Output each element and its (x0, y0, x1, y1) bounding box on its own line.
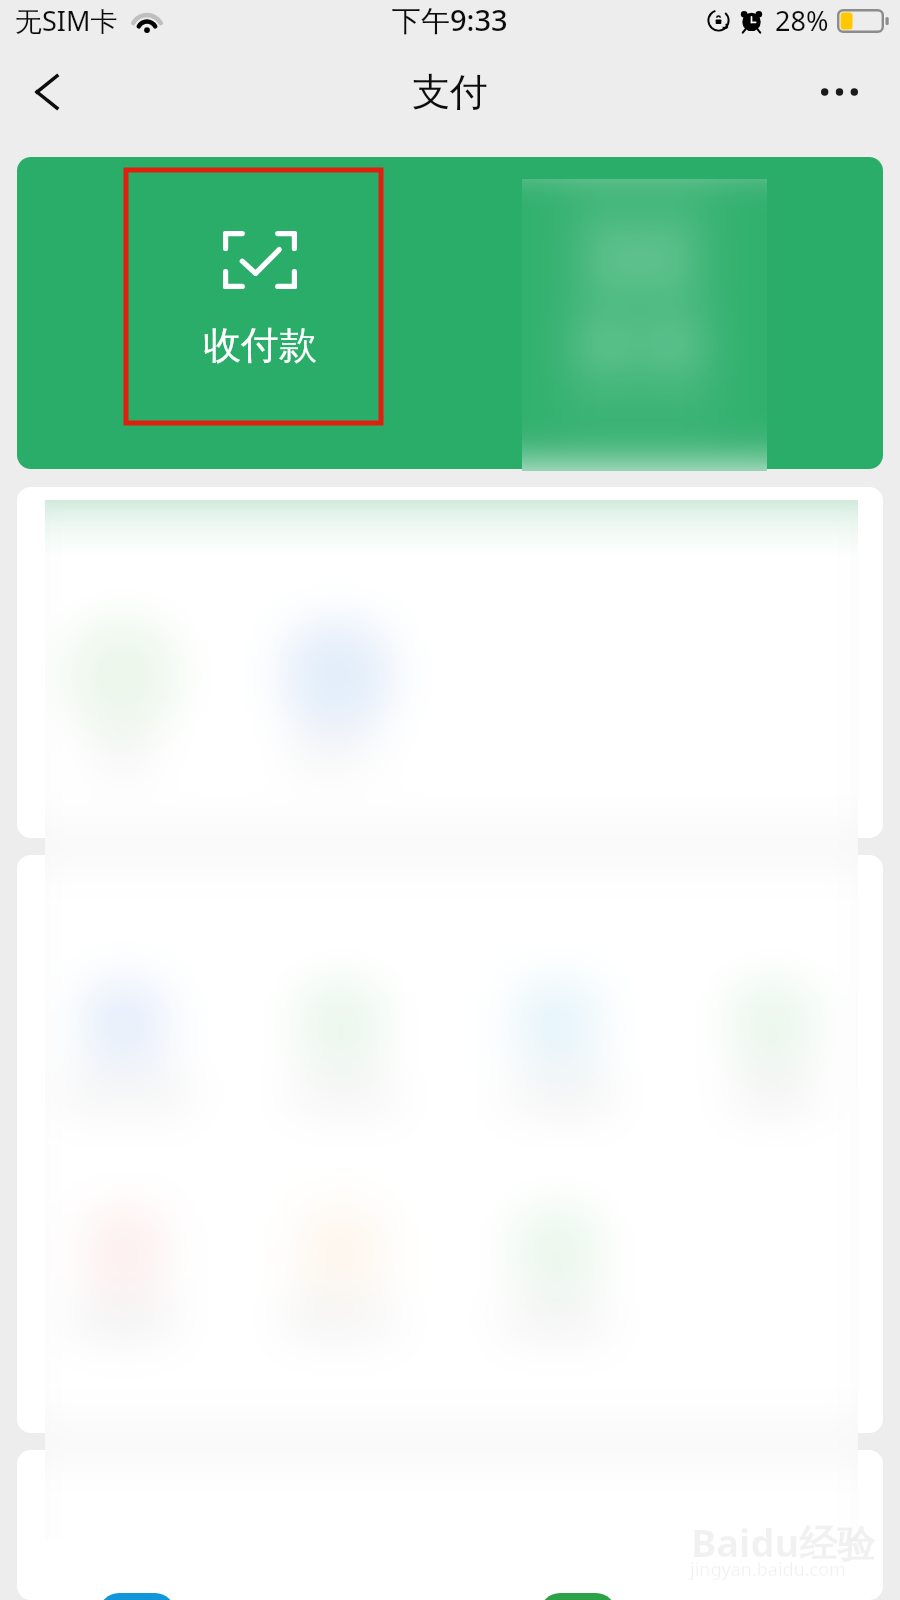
button[interactable]: 收付款 (140, 177, 380, 449)
staticText: 无SIM卡 (15, 2, 118, 39)
button[interactable]: 返回 (14, 59, 80, 125)
button[interactable]: 钱包 (17, 624, 227, 775)
button[interactable]: 城市服务 (449, 1207, 665, 1340)
button[interactable]: 火车票机票 (99, 1593, 175, 1600)
staticText: 28% (775, 2, 829, 39)
staticText: 收付款 (203, 321, 317, 369)
button[interactable]: 收付款 (140, 177, 380, 449)
staticText: 收付款 (203, 321, 317, 369)
staticText: 收付款 (203, 321, 317, 369)
button[interactable]: 更多 (806, 59, 872, 125)
button[interactable]: 银行卡 (227, 624, 447, 775)
button[interactable]: 返回 (14, 59, 80, 125)
button[interactable]: 火车票机票 (99, 1593, 175, 1600)
staticText: 无SIM卡 (15, 2, 118, 39)
button[interactable]: 腾讯公益 (233, 1207, 449, 1340)
button[interactable]: 返回 (14, 59, 80, 125)
button[interactable]: 城市服务 (449, 1207, 665, 1340)
button[interactable]: 手机充值 (233, 981, 449, 1114)
button[interactable]: 生活缴费 (449, 981, 665, 1114)
button[interactable]: 更多 (806, 59, 872, 125)
button[interactable]: 火车票机票 (99, 1593, 175, 1600)
staticText: 下午9:33 (392, 0, 508, 40)
button[interactable]: 收付款 (140, 177, 380, 449)
button[interactable]: 信用卡还款 (17, 981, 233, 1114)
button[interactable]: 滴滴出行 (540, 1593, 616, 1600)
button[interactable]: 银行卡 (227, 624, 447, 775)
staticText: 支付 (412, 68, 488, 116)
staticText: 下午9:33 (392, 0, 508, 40)
staticText: 28% (775, 2, 829, 39)
button[interactable]: 生活缴费 (449, 981, 665, 1114)
button[interactable]: 信用卡还款 (17, 981, 233, 1114)
button[interactable]: 保险服务 (17, 1207, 233, 1340)
button[interactable]: 银行卡 (227, 624, 447, 775)
button[interactable]: 信用卡还款 (17, 981, 233, 1114)
button[interactable]: 腾讯公益 (233, 1207, 449, 1340)
button[interactable]: 手机充值 (233, 981, 449, 1114)
button[interactable]: 滴滴出行 (540, 1593, 616, 1600)
button[interactable]: 保险服务 (17, 1207, 233, 1340)
button[interactable]: 扫一扫 (520, 177, 760, 449)
button[interactable]: 滴滴出行 (540, 1593, 616, 1600)
staticText: 无SIM卡 (15, 2, 118, 39)
button[interactable]: 手机充值 (233, 981, 449, 1114)
staticText: Baidu经验 (691, 1516, 876, 1568)
button[interactable]: 理财通 (665, 981, 881, 1114)
staticText: 28% (775, 2, 829, 39)
button[interactable]: 钱包 (17, 624, 227, 775)
button[interactable]: 扫一扫 (520, 177, 760, 449)
staticText: 下午9:33 (392, 0, 508, 40)
button[interactable]: 理财通 (665, 981, 881, 1114)
staticText: jingyan.baidu.com (690, 1557, 846, 1582)
button[interactable]: 钱包 (17, 624, 227, 775)
button[interactable]: 城市服务 (449, 1207, 665, 1340)
button[interactable]: 更多 (806, 59, 872, 125)
staticText: 支付 (412, 68, 488, 116)
button[interactable]: 扫一扫 (520, 177, 760, 449)
button[interactable]: 保险服务 (17, 1207, 233, 1340)
button[interactable]: 生活缴费 (449, 981, 665, 1114)
button[interactable]: 腾讯公益 (233, 1207, 449, 1340)
button[interactable]: 理财通 (665, 981, 881, 1114)
staticText: 支付 (412, 68, 488, 116)
